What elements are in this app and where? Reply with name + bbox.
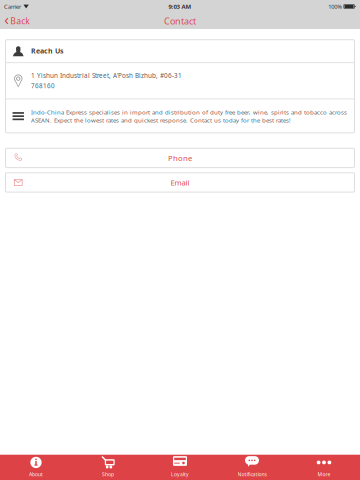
staticText: Carrier (4, 3, 21, 10)
button[interactable]: Email (0, 173, 360, 192)
staticText: Reach Us (31, 46, 64, 56)
button[interactable]: Phone (0, 148, 360, 168)
button[interactable]: Back (0, 13, 36, 29)
staticText: Email (170, 177, 189, 188)
staticText: More (317, 471, 330, 478)
staticText: About (29, 471, 43, 478)
button[interactable]: Loyalty (144, 455, 216, 480)
staticText: Indo-China Express specialises in import… (31, 108, 347, 124)
staticText: 9:03 AM (168, 2, 191, 11)
button[interactable]: About (0, 455, 72, 480)
staticText: 768160 (31, 81, 55, 90)
button[interactable]: Shop (72, 455, 144, 480)
button[interactable]: More (288, 455, 360, 480)
staticText: 1 Yishun Industrial Street, A'Posh Bizhu… (31, 71, 182, 80)
staticText: Phone (168, 153, 192, 163)
button[interactable]: Notifications (216, 455, 288, 480)
staticText: 100% (328, 3, 342, 10)
staticText: Contact (164, 15, 196, 27)
staticText: Loyalty (171, 471, 189, 478)
staticText: Notifications (237, 471, 266, 478)
staticText: Shop (102, 471, 114, 478)
staticText: Back (10, 15, 30, 27)
